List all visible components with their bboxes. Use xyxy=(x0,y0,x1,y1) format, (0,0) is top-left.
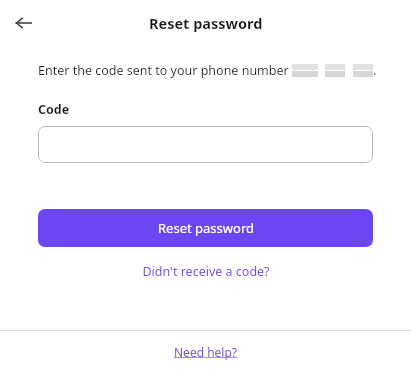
staticText: Need help? xyxy=(174,344,238,360)
button[interactable]: Didn't receive a code? xyxy=(136,259,276,284)
button[interactable]: Need help? xyxy=(166,339,246,365)
button[interactable]: Reset password xyxy=(38,209,373,247)
staticText: Reset password xyxy=(149,13,263,33)
staticText: Reset password xyxy=(158,219,254,237)
staticText: Enter the code sent to your phone number xyxy=(38,62,292,79)
staticText: Didn't receive a code? xyxy=(142,263,270,280)
button[interactable]: Back xyxy=(9,8,39,38)
staticText: Code xyxy=(38,101,70,118)
button[interactable] xyxy=(38,126,373,163)
